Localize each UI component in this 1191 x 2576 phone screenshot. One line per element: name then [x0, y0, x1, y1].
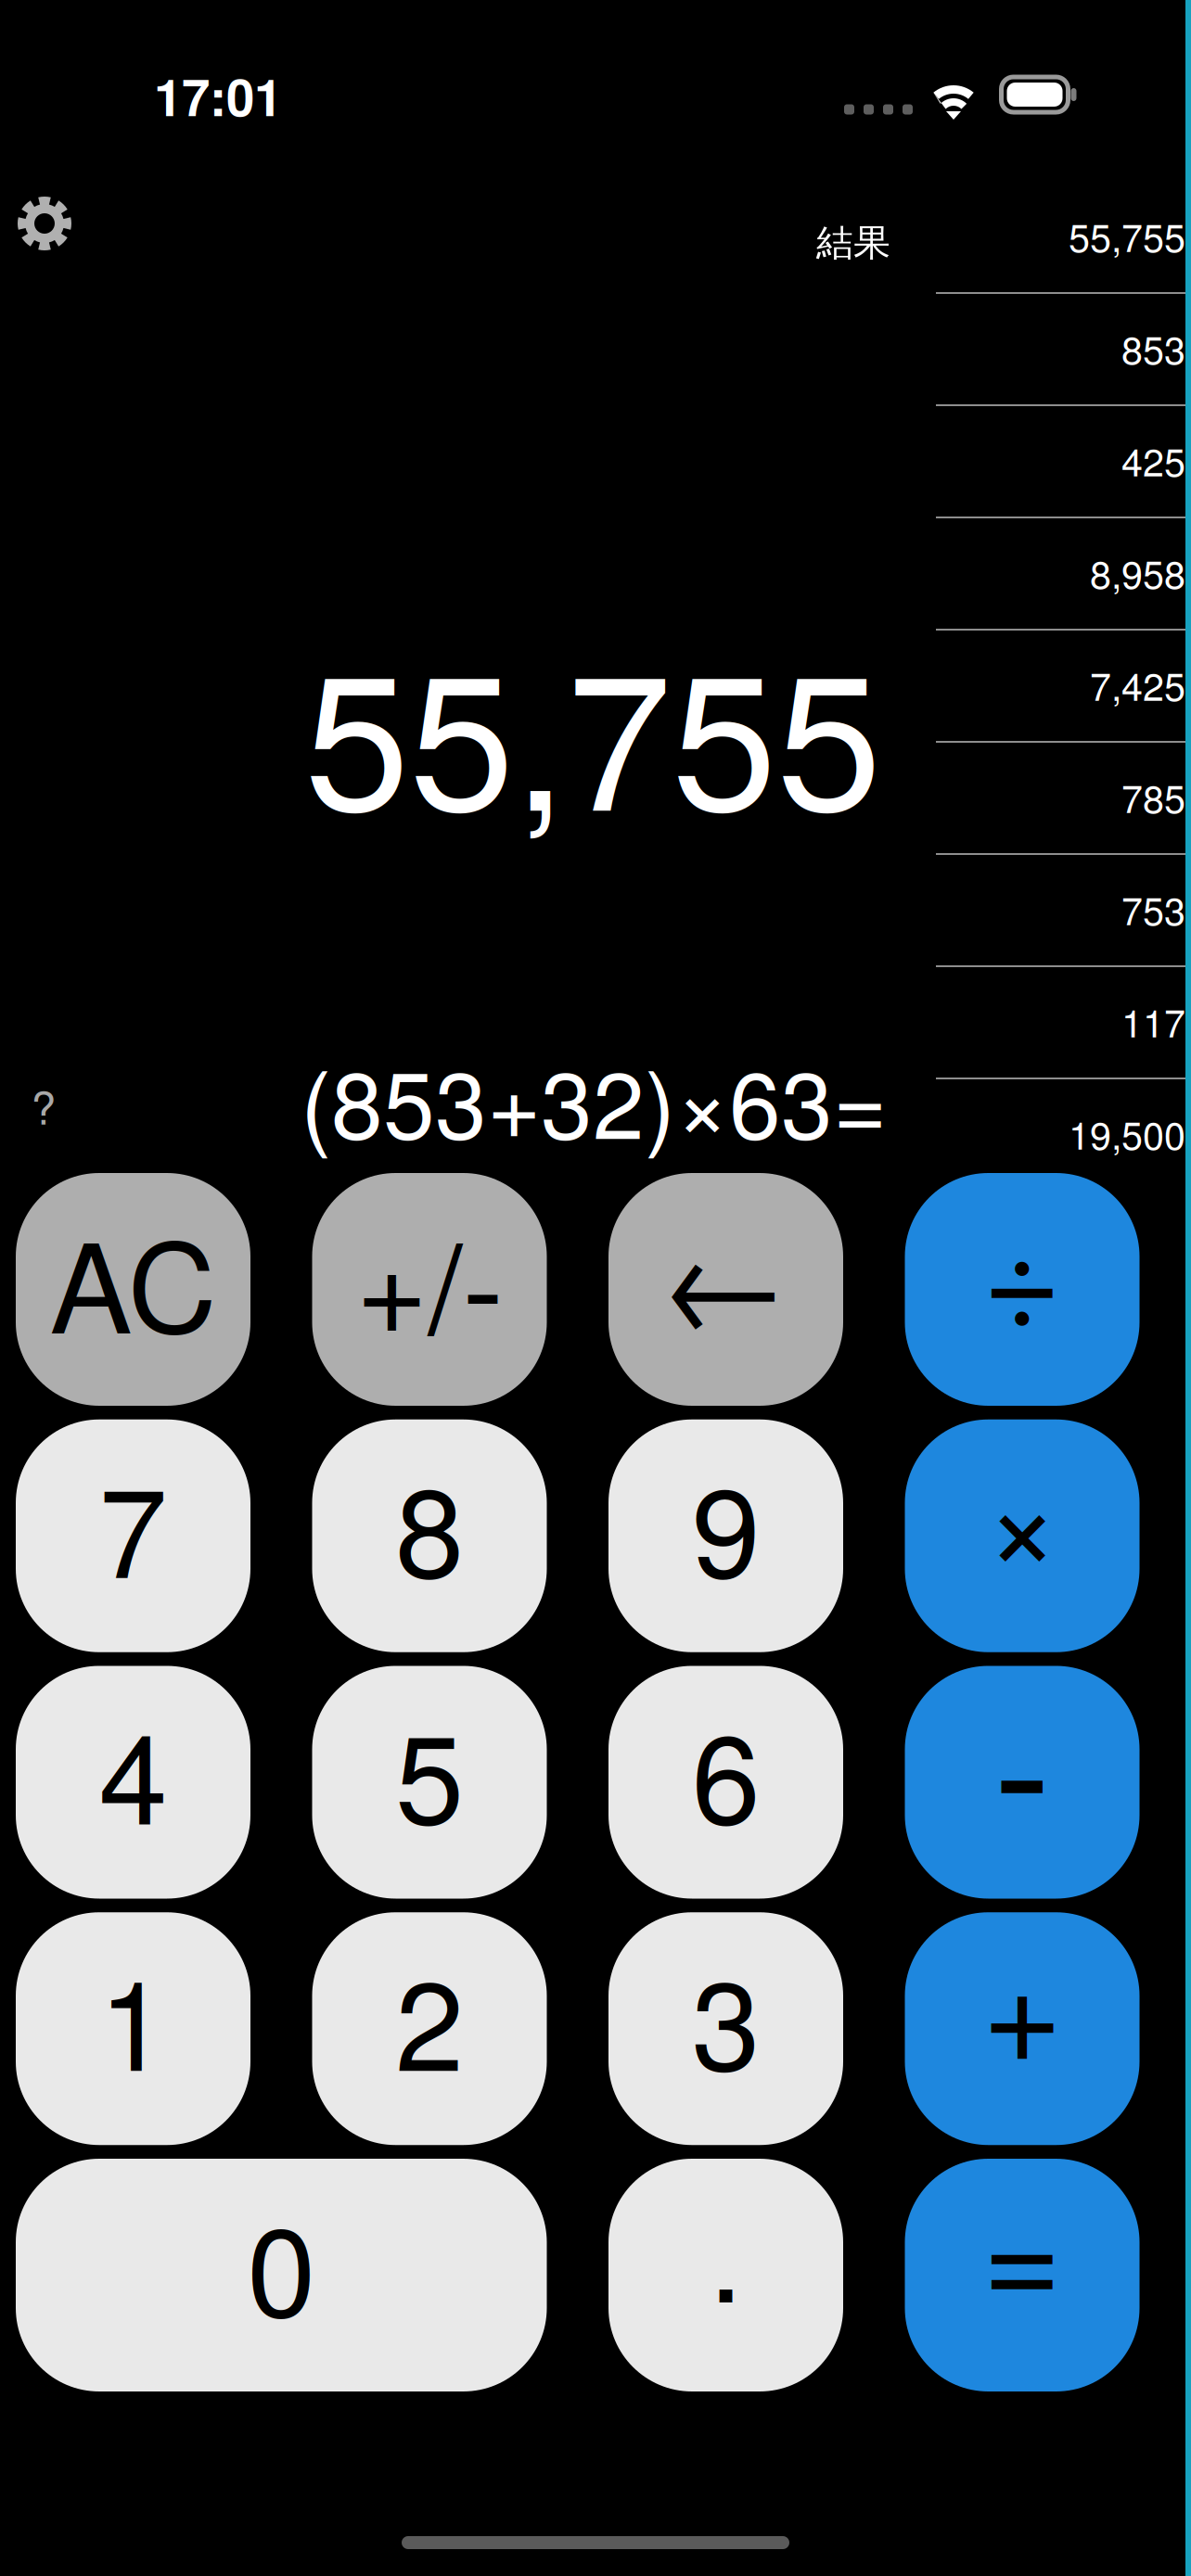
staticText: 5	[395, 1683, 464, 1860]
button[interactable]: 853	[936, 292, 1185, 404]
staticText: =	[982, 2150, 1062, 2345]
button[interactable]: Settings	[0, 163, 105, 284]
button[interactable]: 6	[608, 1666, 843, 1899]
button[interactable]: +/-	[312, 1173, 547, 1406]
staticText: 55,755	[1069, 208, 1185, 263]
staticText: ←	[659, 1177, 793, 1368]
staticText: ?	[31, 1073, 56, 1137]
staticText: ×	[986, 1425, 1059, 1606]
staticText: 7,425	[1090, 657, 1185, 712]
staticText: 19,500	[1069, 1106, 1185, 1161]
button[interactable]: 55,755	[936, 179, 1185, 292]
button[interactable]: 117	[936, 965, 1185, 1077]
staticText: 853	[1121, 320, 1185, 375]
staticText: 1	[99, 1929, 167, 2106]
staticText: 7	[99, 1436, 167, 1613]
button[interactable]: 3	[608, 1912, 843, 2145]
button[interactable]: 9	[608, 1419, 843, 1652]
button[interactable]: 7,425	[936, 628, 1185, 740]
staticText: 785	[1121, 769, 1185, 824]
button[interactable]: ←	[608, 1173, 843, 1406]
button[interactable]: ÷	[905, 1173, 1140, 1406]
staticText: 6	[692, 1683, 760, 1860]
button[interactable]: 0	[16, 2159, 547, 2391]
staticText: 425	[1121, 432, 1185, 487]
button[interactable]: 19,500	[936, 1077, 1185, 1189]
button[interactable]: 8	[312, 1419, 547, 1652]
button[interactable]: 425	[936, 404, 1185, 516]
staticText: AC	[50, 1192, 217, 1369]
staticText: 8,958	[1090, 545, 1185, 600]
staticText: 753	[1121, 881, 1185, 936]
staticText: 0	[247, 2175, 316, 2352]
button[interactable]: -	[905, 1666, 1140, 1899]
staticText: 8	[395, 1436, 464, 1613]
button[interactable]: =	[905, 2159, 1140, 2391]
button[interactable]: 2	[312, 1912, 547, 2145]
staticText: 117	[1121, 993, 1185, 1048]
button[interactable]: 5	[312, 1666, 547, 1899]
staticText: (853+32)×63=	[301, 1032, 887, 1165]
staticText: +	[982, 1904, 1063, 2102]
staticText: 55,755	[304, 593, 881, 864]
staticText: 結果	[816, 220, 890, 266]
staticText: -	[993, 1636, 1051, 1884]
button[interactable]: 7	[16, 1419, 250, 1652]
button[interactable]: 1	[16, 1912, 250, 2145]
staticText: +/-	[356, 1192, 503, 1369]
staticText: .	[709, 2161, 743, 2338]
staticText: 3	[692, 1929, 760, 2106]
staticText: 4	[99, 1683, 167, 1860]
button[interactable]: ×	[905, 1419, 1140, 1652]
staticText: 2	[395, 1929, 464, 2106]
staticText: 9	[692, 1436, 760, 1613]
button[interactable]: .	[608, 2159, 843, 2391]
button[interactable]: 8,958	[936, 516, 1185, 628]
staticText: ÷	[982, 1172, 1062, 1366]
button[interactable]: 4	[16, 1666, 250, 1899]
button[interactable]: +	[905, 1912, 1140, 2145]
button[interactable]: AC	[16, 1173, 250, 1406]
staticText: 17:01	[154, 59, 282, 132]
button[interactable]: 785	[936, 740, 1185, 853]
button[interactable]: 753	[936, 853, 1185, 965]
